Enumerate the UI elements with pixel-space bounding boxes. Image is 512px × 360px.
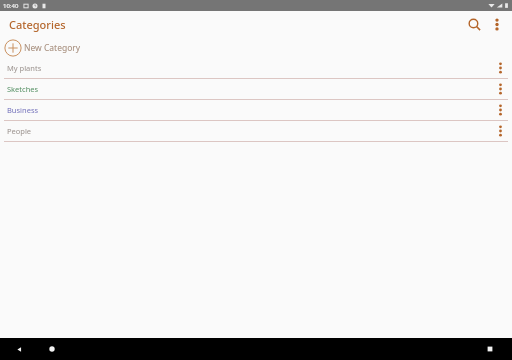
button[interactable]: Category options xyxy=(490,58,510,78)
button[interactable]: Search xyxy=(462,12,486,36)
staticText: Categories xyxy=(9,17,66,32)
staticText: Sketches xyxy=(7,84,490,94)
button[interactable]: Home xyxy=(43,340,61,358)
button[interactable]: People xyxy=(0,121,512,141)
staticText: 10:40 xyxy=(3,2,19,10)
button[interactable]: Business xyxy=(0,100,512,120)
button[interactable]: More options xyxy=(486,13,508,35)
button[interactable]: My plants xyxy=(0,58,512,78)
button[interactable]: Recent apps xyxy=(481,340,499,358)
staticText: New Category xyxy=(24,42,81,54)
button[interactable]: Category options xyxy=(490,100,510,120)
staticText: Business xyxy=(7,105,490,115)
button[interactable]: Category options xyxy=(490,79,510,99)
button[interactable]: Sketches xyxy=(0,79,512,99)
staticText: My plants xyxy=(7,63,490,73)
button[interactable]: Back xyxy=(10,340,28,358)
staticText: People xyxy=(7,126,490,136)
button[interactable]: New Category xyxy=(0,37,512,58)
button[interactable]: Category options xyxy=(490,121,510,141)
